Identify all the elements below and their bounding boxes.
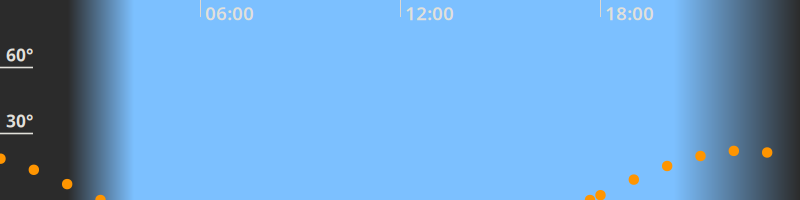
staticText: 60° — [6, 43, 33, 66]
button[interactable]: 12:00 — [405, 3, 461, 23]
staticText: 18:00 — [605, 1, 654, 25]
staticText: 30° — [6, 109, 33, 132]
staticText: 12:00 — [405, 1, 454, 25]
button[interactable]: 18:00 — [605, 3, 661, 23]
staticText: 06:00 — [205, 1, 254, 25]
button[interactable]: 06:00 — [205, 3, 261, 23]
button[interactable]: Hourly temperature chart — [0, 0, 800, 200]
